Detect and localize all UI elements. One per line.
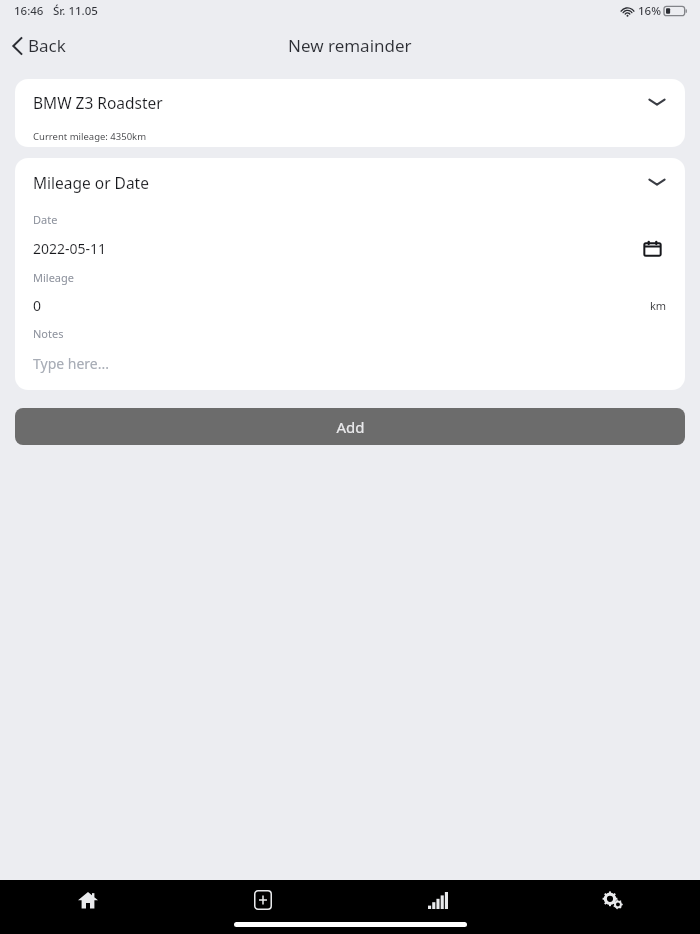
button[interactable]: Pick date xyxy=(637,233,667,263)
staticText: Add xyxy=(336,417,365,437)
staticText: 0 xyxy=(33,296,42,315)
button[interactable]: Statistics xyxy=(350,880,525,920)
button[interactable]: Add xyxy=(175,880,350,920)
staticText: Current mileage: 4350km xyxy=(33,130,147,143)
button[interactable]: Back xyxy=(0,28,78,63)
staticText: Type here... xyxy=(33,354,109,373)
staticText: New remainder xyxy=(288,34,412,57)
staticText: Back xyxy=(28,34,66,57)
other: Expand xyxy=(647,176,667,188)
button[interactable]: Add xyxy=(15,408,685,445)
button[interactable]: BMW Z3 Roadster xyxy=(15,79,685,147)
button[interactable]: Mileage or Date xyxy=(15,158,685,206)
staticText: Mileage or Date xyxy=(33,172,149,193)
button[interactable]: Home xyxy=(0,880,175,920)
staticText: Date xyxy=(33,212,58,227)
staticText: Mileage xyxy=(33,270,74,285)
staticText: km xyxy=(650,298,667,313)
other: Expand xyxy=(647,96,667,108)
staticText: BMW Z3 Roadster xyxy=(33,92,163,113)
staticText: 16% xyxy=(638,3,661,19)
staticText: Śr. 11.05 xyxy=(53,3,98,19)
staticText: Notes xyxy=(33,326,64,341)
button[interactable]: Settings xyxy=(525,880,700,920)
staticText: 16:46 xyxy=(14,3,44,19)
staticText: 2022-05-11 xyxy=(33,239,107,258)
